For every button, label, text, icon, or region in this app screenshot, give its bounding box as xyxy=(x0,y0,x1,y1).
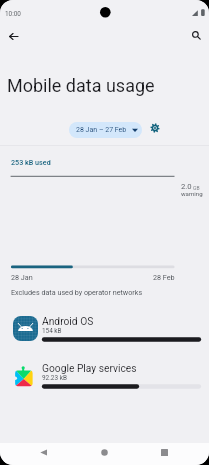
staticText: 10:00 xyxy=(5,10,21,18)
button[interactable]: Back xyxy=(31,441,56,463)
staticText: Google Play services xyxy=(42,362,137,374)
staticText: 2.0 xyxy=(181,182,192,191)
staticText: 154 kB xyxy=(42,327,62,335)
staticText: 28 Feb xyxy=(153,273,175,281)
staticText: warning xyxy=(181,190,203,197)
button[interactable]: Settings xyxy=(146,119,164,137)
staticText: 28 Jan xyxy=(11,273,33,281)
staticText: 253 kB used xyxy=(11,158,51,166)
staticText: Android OS xyxy=(42,315,94,327)
button[interactable]: Search xyxy=(185,24,208,47)
staticText: Mobile data usage xyxy=(7,75,155,96)
staticText: Excludes data used by operator networks xyxy=(11,288,143,296)
button[interactable]: Google Play services xyxy=(0,362,209,409)
staticText: GB xyxy=(193,185,200,191)
button[interactable]: Back xyxy=(2,25,25,48)
button[interactable]: Home xyxy=(92,441,117,463)
button[interactable]: 28 Jan – 27 Feb xyxy=(69,122,142,138)
button[interactable]: Recents xyxy=(152,441,177,463)
staticText: 28 Jan – 27 Feb xyxy=(76,126,127,134)
button[interactable]: Android OS xyxy=(0,315,209,362)
staticText: 92.23 kB xyxy=(42,374,67,382)
